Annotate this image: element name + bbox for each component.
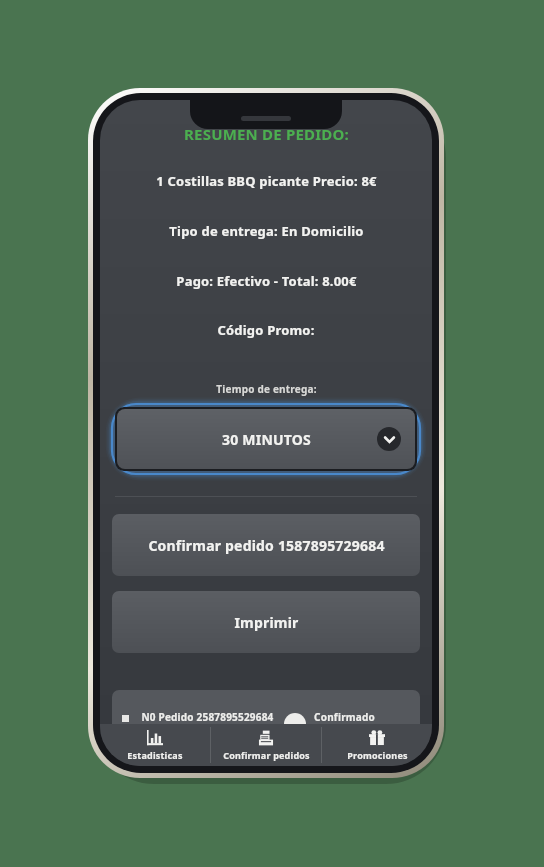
staticText: Confirmado — [314, 710, 375, 724]
staticText: 1 Costillas BBQ picante Precio: 8€ — [156, 172, 377, 190]
staticText: RESUMEN DE PEDIDO: — [184, 124, 349, 144]
staticText: Promociones — [347, 749, 408, 761]
button[interactable]: Confirmar pedido 1587895729684 — [112, 514, 420, 576]
button[interactable]: Promociones — [322, 724, 432, 766]
staticText: Estadisticas — [127, 749, 183, 761]
staticText: N0 Pedido 2587895529684 — [141, 710, 274, 724]
button[interactable]: Confirmar pedidos — [211, 724, 321, 766]
staticText: Código Promo: — [217, 321, 315, 339]
staticText: Confirmar pedidos — [223, 749, 310, 761]
button[interactable]: 30 MINUTOS — [117, 409, 415, 469]
staticText: Tiempo de entrega: — [216, 382, 317, 396]
staticText: Pago: Efectivo - Total: 8.00€ — [176, 272, 357, 290]
staticText: 30 MINUTOS — [222, 430, 311, 449]
button[interactable]: N0 Pedido 2587895529684 — [112, 690, 420, 724]
staticText: Imprimir — [234, 613, 299, 632]
staticText: Confirmar pedido 1587895729684 — [148, 536, 385, 555]
button[interactable]: Imprimir — [112, 591, 420, 653]
staticText: Tipo de entrega: En Domicilio — [169, 222, 364, 240]
button[interactable]: Estadisticas — [100, 724, 210, 766]
